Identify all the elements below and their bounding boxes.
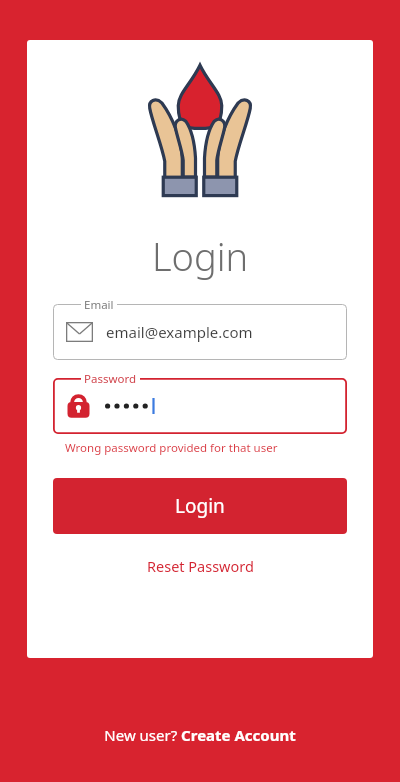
button[interactable]: Reset Password <box>137 552 264 580</box>
button[interactable]: New user? Create Account <box>92 719 308 751</box>
staticText: Password <box>84 371 137 387</box>
staticText: Reset Password <box>147 556 254 576</box>
staticText: New user? Create Account <box>104 725 296 745</box>
staticText: Email <box>84 297 114 313</box>
staticText: email@example.com <box>106 322 253 342</box>
button[interactable]: Login <box>53 478 347 534</box>
other: Password <box>66 392 91 420</box>
other: Email <box>66 322 93 342</box>
button[interactable]: Email <box>53 304 347 360</box>
staticText: Wrong password provided for that user <box>65 440 278 456</box>
staticText: Login <box>152 230 249 282</box>
staticText: Login <box>175 493 225 519</box>
button[interactable]: Password <box>53 378 347 434</box>
